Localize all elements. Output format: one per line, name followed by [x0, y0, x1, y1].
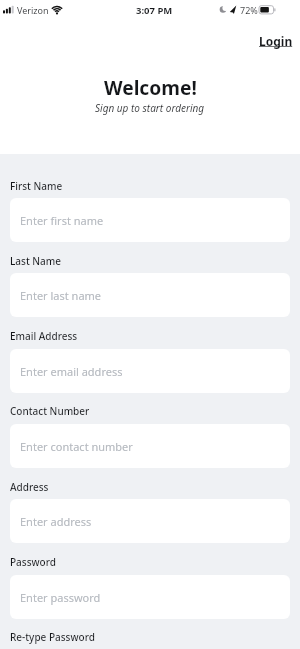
staticText: Enter password	[20, 590, 101, 605]
staticText: Email Address	[10, 329, 78, 343]
staticText: Login	[259, 33, 293, 49]
staticText: Contact Number	[10, 404, 90, 418]
staticText: 3:07 PM	[136, 4, 173, 17]
staticText: Password	[10, 555, 56, 569]
staticText: Verizon	[17, 4, 49, 16]
staticText: Last Name	[10, 254, 62, 268]
staticText: Enter email address	[20, 364, 123, 379]
staticText: 72%	[240, 4, 258, 16]
staticText: Enter contact number	[20, 439, 133, 454]
staticText: Enter first name	[20, 213, 104, 228]
staticText: Enter last name	[20, 288, 102, 303]
staticText: First Name	[10, 179, 63, 193]
staticText: Address	[10, 480, 49, 494]
staticText: Sign up to start ordering	[95, 101, 205, 115]
staticText: Enter address	[20, 514, 92, 529]
staticText: Re-type Password	[10, 630, 95, 644]
staticText: Welcome!	[104, 74, 197, 100]
